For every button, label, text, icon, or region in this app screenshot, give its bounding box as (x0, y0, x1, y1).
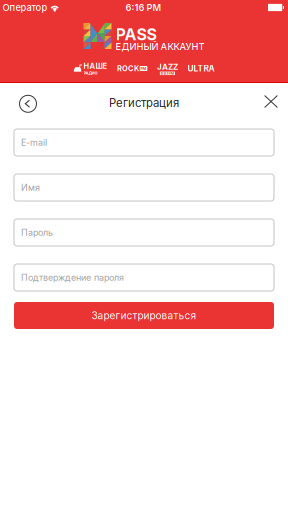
staticText: 89.1FM (160, 71, 174, 76)
staticText: Регистрация (109, 96, 179, 110)
staticText: РАДИО (83, 71, 97, 75)
staticText: Зарегистрироваться (91, 309, 196, 322)
staticText: Имя (21, 182, 40, 193)
staticText: Подтверждение пароля (21, 272, 124, 283)
staticText: E-mail (21, 137, 47, 148)
staticText: JAZZ (157, 62, 178, 72)
staticText: 6:16 PM (125, 2, 161, 13)
button[interactable]: Пароль (14, 219, 274, 246)
button[interactable]: Назад (15, 90, 41, 116)
button[interactable]: Подтверждение пароля (14, 264, 274, 291)
staticText: ULTRA (187, 63, 214, 73)
button[interactable]: E-mail (14, 129, 274, 156)
staticText: PASS (115, 25, 156, 44)
staticText: ROCK (117, 64, 139, 73)
button[interactable]: Зарегистрироваться (14, 302, 274, 329)
staticText: ЕДИНЫЙ АККАУНТ (115, 41, 204, 52)
staticText: НАШЕ (83, 62, 107, 71)
staticText: Оператор (2, 2, 47, 13)
staticText: FM (140, 66, 146, 71)
button[interactable]: Имя (14, 174, 274, 201)
staticText: Пароль (21, 227, 53, 238)
button[interactable]: Закрыть (258, 90, 284, 116)
